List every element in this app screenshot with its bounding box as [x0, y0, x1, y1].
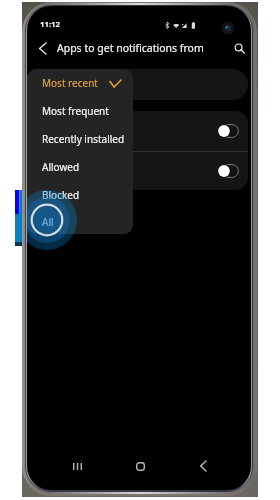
button[interactable]: Recent apps	[65, 454, 89, 478]
button[interactable]: Most recent	[27, 69, 133, 97]
staticText: Allowed	[42, 160, 80, 174]
staticText: Blocked	[42, 188, 80, 202]
button[interactable]: Toggle	[35, 111, 248, 151]
staticText: Apps to get notifications from	[57, 41, 204, 55]
staticText: 11:12	[40, 19, 61, 30]
button[interactable]: All	[27, 209, 133, 234]
button[interactable]: Navigate up	[30, 36, 54, 60]
button[interactable]: Back	[191, 454, 215, 478]
staticText: Recently installed	[42, 132, 125, 146]
staticText: Most frequent	[42, 104, 109, 118]
button[interactable]: Search	[227, 36, 251, 60]
button[interactable]: Recently installed	[27, 125, 133, 153]
button[interactable]: Toggle	[217, 124, 239, 138]
button[interactable]: Toggle	[217, 164, 239, 178]
staticText: Most recent	[42, 76, 98, 90]
button[interactable]: Toggle	[35, 152, 248, 190]
button[interactable]: Most frequent	[27, 97, 133, 125]
button[interactable]: Home	[128, 454, 152, 478]
staticText: All	[42, 215, 54, 229]
button[interactable]: Blocked	[27, 181, 133, 209]
button[interactable]: Allowed	[27, 153, 133, 181]
button[interactable]	[35, 69, 248, 100]
